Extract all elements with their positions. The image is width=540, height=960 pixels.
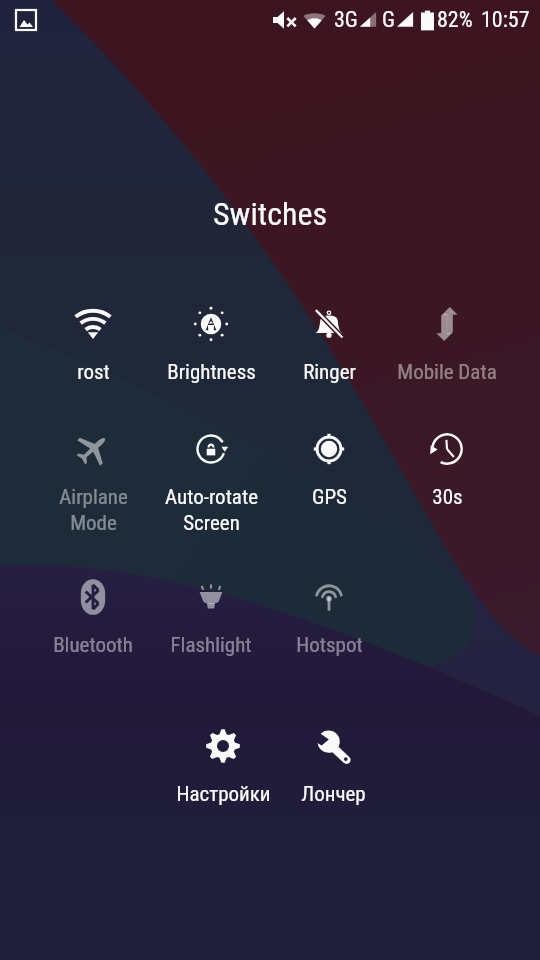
staticText: 3G: [334, 7, 358, 33]
button[interactable]: 30s: [388, 426, 506, 514]
button[interactable]: Лончер: [278, 723, 388, 811]
staticText: Switches: [0, 195, 540, 233]
staticText: Mobile Data: [397, 360, 497, 385]
button[interactable]: Bluetooth: [34, 574, 152, 662]
button[interactable]: Mobile Data: [388, 301, 506, 389]
staticText: GPS: [312, 485, 347, 510]
button[interactable]: Hotspot: [270, 574, 388, 662]
other: Screenshot notification: [12, 0, 52, 40]
staticText: Настройки: [176, 782, 271, 807]
staticText: G: [382, 7, 395, 33]
staticText: Flashlight: [170, 633, 252, 658]
button[interactable]: Настройки: [168, 723, 278, 811]
staticText: Brightness: [167, 360, 256, 385]
staticText: 30s: [432, 485, 463, 510]
staticText: Airplane Mode: [59, 485, 128, 535]
staticText: 82%: [437, 7, 473, 33]
staticText: Bluetooth: [53, 633, 133, 658]
button[interactable]: Airplane Mode: [34, 426, 152, 539]
button[interactable]: Ringer: [270, 301, 388, 389]
button[interactable]: Brightness: [152, 301, 270, 389]
staticText: Лончер: [301, 782, 366, 807]
staticText: 10:57: [481, 7, 530, 33]
staticText: Hotspot: [296, 633, 363, 658]
staticText: rost: [77, 360, 110, 385]
staticText: Ringer: [303, 360, 356, 385]
button[interactable]: GPS: [270, 426, 388, 514]
button[interactable]: Auto-rotate Screen: [152, 426, 270, 539]
button[interactable]: Flashlight: [152, 574, 270, 662]
staticText: Auto-rotate Screen: [165, 485, 258, 535]
button[interactable]: rost: [34, 301, 152, 389]
